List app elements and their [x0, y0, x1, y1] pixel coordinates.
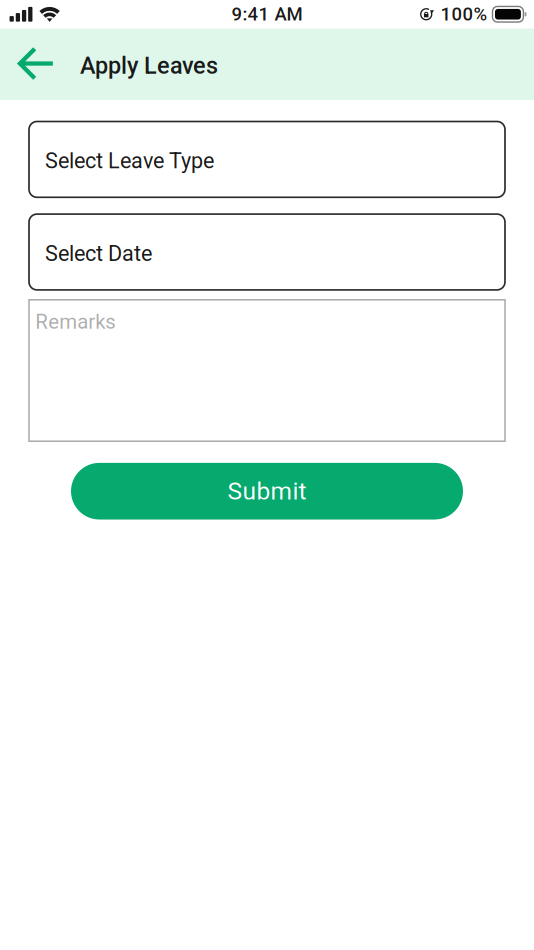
staticText: Select Date: [45, 241, 152, 266]
button[interactable]: Select Date: [29, 214, 505, 290]
staticText: 100%: [440, 3, 487, 25]
button[interactable]: Select Leave Type: [29, 121, 505, 197]
staticText: Submit: [227, 477, 306, 506]
staticText: Select Leave Type: [45, 148, 214, 173]
staticText: 9:41 AM: [231, 3, 302, 25]
staticText: Apply Leaves: [80, 52, 218, 79]
button[interactable]: Submit: [71, 463, 463, 519]
button[interactable]: Back: [0, 28, 80, 100]
button[interactable]: Remarks: [29, 300, 505, 441]
staticText: Remarks: [35, 310, 116, 334]
